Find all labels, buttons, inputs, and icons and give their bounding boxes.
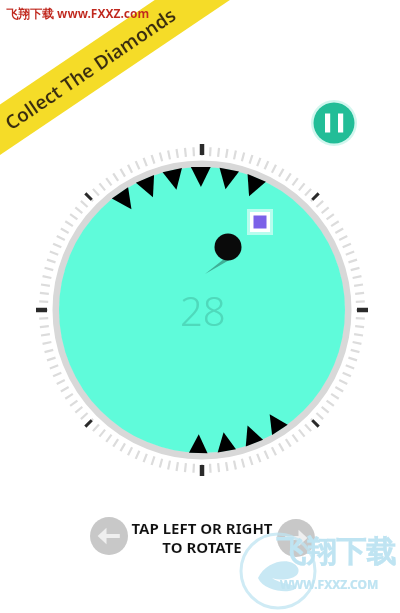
button[interactable]: Pause [311,100,357,146]
staticText: Collect The Diamonds [0,2,181,136]
staticText: 飞翔下载 [276,533,396,571]
staticText: 飞翔下载 www.FXXZ.com [6,5,150,21]
button[interactable]: Rotate right [277,519,315,557]
staticText: 28 [180,283,226,329]
staticText: TAP LEFT OR RIGHT TO ROTATE [131,518,273,557]
button[interactable]: Rotate left [90,517,128,555]
staticText: WWW.FXXZ.COM [280,576,379,592]
